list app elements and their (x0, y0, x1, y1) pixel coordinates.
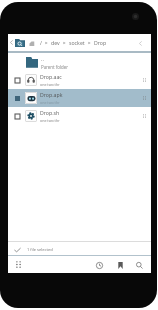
staticText: 1 file selected (27, 247, 53, 252)
button[interactable]: Recent (93, 259, 105, 271)
button[interactable]: Drop.aac (8, 71, 151, 89)
staticText: one two thr (40, 100, 60, 105)
button[interactable]: Search (133, 259, 145, 271)
button[interactable]: Drop (94, 39, 107, 46)
button[interactable]: / (40, 39, 42, 46)
staticText: one two thr (40, 118, 60, 123)
staticText: one two thr (40, 82, 60, 87)
staticText: Drop.apk (40, 91, 63, 98)
button[interactable]: Menu (13, 259, 24, 270)
staticText: .. (41, 55, 44, 62)
staticText: Drop.aac (40, 73, 62, 80)
button[interactable]: socket (69, 39, 85, 46)
button[interactable]: 1 file selected (8, 242, 151, 257)
button[interactable]: .. (8, 53, 151, 71)
button[interactable]: Storage (28, 37, 35, 49)
button[interactable]: Reorder (139, 75, 149, 85)
button[interactable]: Bookmarks (114, 259, 126, 271)
button[interactable]: Reorder (139, 111, 149, 121)
button[interactable]: dev (51, 39, 60, 46)
button[interactable]: Drop.apk (8, 89, 151, 107)
staticText: Drop.sh (40, 109, 60, 116)
staticText: Parent folder (41, 64, 69, 70)
button[interactable]: Back (9, 36, 14, 49)
button[interactable]: Drop.sh (8, 107, 151, 125)
button[interactable]: Reorder (139, 93, 149, 103)
button[interactable]: Current folder (14, 36, 25, 49)
button[interactable]: Forward (136, 37, 145, 49)
